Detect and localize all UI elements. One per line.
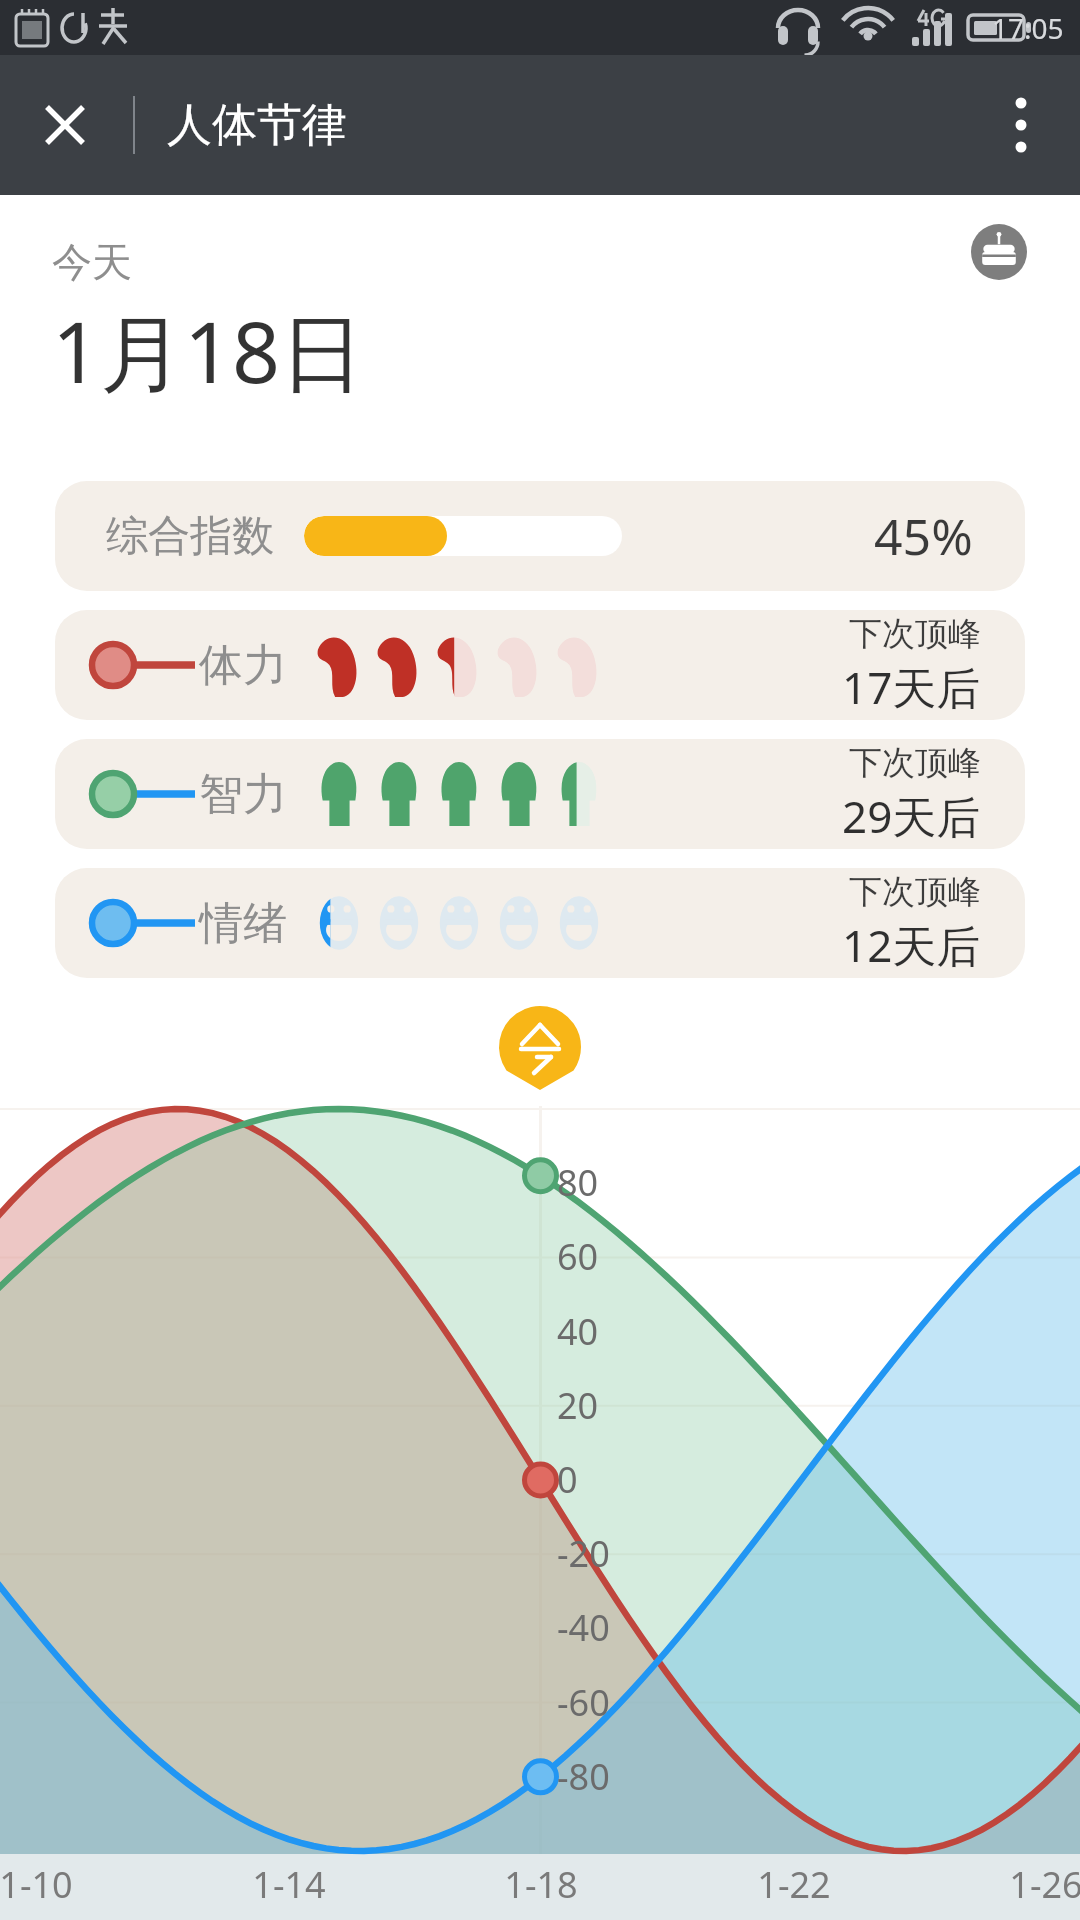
staticText: 情绪 [199, 896, 287, 951]
button[interactable]: 情绪 [55, 868, 1025, 978]
button[interactable]: Birthday [971, 224, 1027, 280]
staticText: -20 [557, 1529, 610, 1578]
staticText: 下次顶峰 [849, 613, 981, 655]
staticText: 29天后 [842, 786, 981, 846]
staticText: -40 [557, 1603, 610, 1652]
button[interactable]: 体力 [55, 610, 1025, 720]
staticText: 1-26 [1009, 1860, 1080, 1909]
button[interactable]: 综合指数 [55, 481, 1025, 591]
staticText: 智力 [199, 767, 287, 822]
staticText: 1-22 [757, 1860, 831, 1909]
button[interactable]: More options [984, 88, 1058, 162]
staticText: 今天 [52, 237, 132, 287]
staticText: 60 [557, 1232, 599, 1281]
staticText: 1月18日 [52, 293, 365, 408]
staticText: 综合指数 [106, 510, 274, 563]
staticText: 20 [557, 1381, 599, 1430]
staticText: 下次顶峰 [849, 871, 981, 913]
staticText: 1-14 [252, 1860, 326, 1909]
staticText: -80 [557, 1752, 610, 1801]
staticText: -60 [557, 1678, 610, 1727]
staticText: 下次顶峰 [849, 742, 981, 784]
staticText: 人体节律 [167, 97, 347, 154]
staticText: 0 [557, 1455, 578, 1504]
button[interactable]: Today [499, 1006, 581, 1090]
staticText: 80 [557, 1158, 599, 1207]
staticText: 1-10 [0, 1860, 73, 1909]
button[interactable]: 智力 [55, 739, 1025, 849]
button[interactable]: Close [26, 86, 104, 164]
staticText: 12天后 [842, 915, 981, 975]
staticText: 17:05 [992, 9, 1064, 47]
staticText: 45% [874, 502, 973, 570]
staticText: 体力 [199, 638, 287, 693]
staticText: 40 [557, 1307, 599, 1356]
staticText: 1-18 [504, 1860, 578, 1909]
staticText: 17天后 [842, 657, 981, 717]
